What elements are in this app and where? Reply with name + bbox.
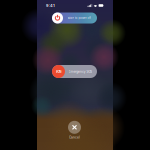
- staticText: SOS: [55, 70, 61, 73]
- staticText: Cancel: [69, 135, 80, 139]
- staticText: 9:41: [46, 3, 55, 8]
- staticText: Emergency SOS: [69, 70, 92, 73]
- staticText: slide to power off: [68, 16, 91, 20]
- button[interactable]: Cancel: [68, 121, 81, 139]
- button[interactable]: slide to power off: [52, 12, 97, 23]
- button[interactable]: Emergency SOS: [52, 65, 97, 78]
